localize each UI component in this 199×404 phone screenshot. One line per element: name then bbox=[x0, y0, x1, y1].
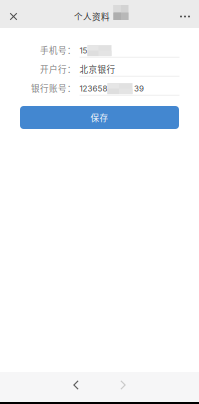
staticText: 开户行： bbox=[40, 63, 76, 75]
staticText: 39 bbox=[134, 84, 144, 93]
button[interactable]: Close bbox=[2, 5, 24, 28]
button[interactable]: Forward bbox=[102, 372, 144, 398]
staticText: 15 bbox=[79, 46, 87, 55]
staticText: 银行账号： bbox=[31, 82, 76, 94]
staticText: 123658 bbox=[79, 84, 107, 93]
button[interactable]: 保存 bbox=[20, 106, 179, 129]
button[interactable]: Back bbox=[55, 372, 97, 398]
staticText: 个人资料 bbox=[74, 10, 110, 23]
staticText: 保存 bbox=[90, 111, 108, 124]
staticText: 手机号： bbox=[40, 44, 76, 56]
button[interactable]: More bbox=[173, 5, 197, 28]
staticText: 北京银行 bbox=[79, 63, 115, 75]
